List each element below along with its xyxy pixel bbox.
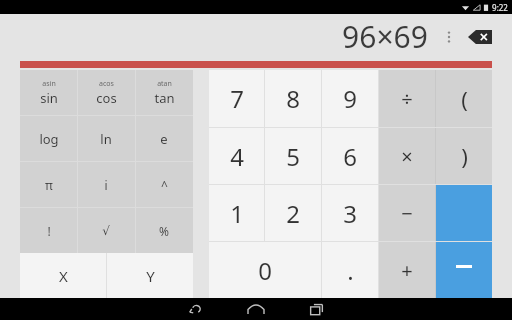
staticText: % xyxy=(159,223,169,239)
staticText: cos xyxy=(96,89,117,107)
button[interactable]: More options xyxy=(442,24,456,50)
staticText: 96×69 xyxy=(342,16,428,57)
button[interactable]: ! xyxy=(20,208,77,253)
staticText: Y xyxy=(146,266,155,286)
button[interactable]: 1 xyxy=(209,185,264,241)
staticText: acos xyxy=(99,79,114,89)
button[interactable]: π xyxy=(20,162,77,207)
button[interactable]: 3 xyxy=(322,185,378,241)
button[interactable]: 5 xyxy=(265,128,321,184)
staticText: sin xyxy=(40,89,58,107)
button[interactable]: × xyxy=(379,128,435,184)
button[interactable]: Back xyxy=(166,298,226,320)
button[interactable]: e xyxy=(135,116,193,161)
staticText: ^ xyxy=(161,177,168,193)
button[interactable]: + xyxy=(379,242,435,298)
button[interactable]: ÷ xyxy=(379,70,435,127)
button[interactable]: % xyxy=(135,208,193,253)
button[interactable]: 7 xyxy=(209,70,264,127)
staticText: 8 xyxy=(286,82,300,115)
button[interactable]: ln xyxy=(77,116,135,161)
staticText: − xyxy=(401,200,413,227)
button[interactable]: acos xyxy=(77,70,135,115)
button[interactable]: 4 xyxy=(209,128,264,184)
staticText: √ xyxy=(102,224,110,238)
button[interactable]: asin xyxy=(20,70,77,115)
button[interactable]: 9 xyxy=(322,70,378,127)
button[interactable]: Home xyxy=(226,298,286,320)
staticText: 9 xyxy=(343,82,357,115)
button[interactable]: X xyxy=(20,253,106,298)
staticText: 0 xyxy=(258,254,272,287)
button[interactable]: . xyxy=(322,242,378,298)
button[interactable]: ) xyxy=(436,128,492,184)
button[interactable]: Recent apps xyxy=(286,298,346,320)
button[interactable]: 8 xyxy=(265,70,321,127)
staticText: 5 xyxy=(286,140,300,173)
staticText: . xyxy=(347,254,354,287)
button[interactable]: i xyxy=(77,162,135,207)
button[interactable]: 0 xyxy=(209,242,321,298)
staticText: 2 xyxy=(286,197,300,230)
staticText: 6 xyxy=(343,140,357,173)
staticText: + xyxy=(401,257,413,284)
staticText: i xyxy=(104,177,108,193)
staticText: ) xyxy=(461,141,468,171)
staticText: atan xyxy=(157,79,172,89)
button[interactable]: log xyxy=(20,116,77,161)
button[interactable]: ( xyxy=(436,70,492,127)
staticText: × xyxy=(401,143,413,170)
staticText: 7 xyxy=(230,82,244,115)
staticText: e xyxy=(160,130,168,148)
staticText: ( xyxy=(461,84,468,114)
staticText: log xyxy=(39,130,59,148)
staticText: ! xyxy=(47,223,51,239)
button[interactable]: 2 xyxy=(265,185,321,241)
button[interactable]: Y xyxy=(107,253,193,298)
button[interactable]: 6 xyxy=(322,128,378,184)
staticText: 4 xyxy=(230,140,244,173)
staticText: ln xyxy=(100,130,112,148)
staticText: tan xyxy=(154,89,175,107)
staticText: 9:22 xyxy=(492,2,508,13)
staticText: π xyxy=(45,177,53,193)
button[interactable]: atan xyxy=(135,70,193,115)
button[interactable]: √ xyxy=(77,208,135,253)
staticText: 3 xyxy=(343,197,357,230)
button[interactable]: − xyxy=(379,185,435,241)
staticText: asin xyxy=(42,79,56,89)
staticText: 1 xyxy=(230,197,244,230)
staticText: ÷ xyxy=(401,85,413,112)
button[interactable]: Delete xyxy=(466,27,494,47)
button[interactable]: ^ xyxy=(135,162,193,207)
staticText: X xyxy=(59,266,68,286)
button[interactable]: Equals xyxy=(436,242,492,298)
